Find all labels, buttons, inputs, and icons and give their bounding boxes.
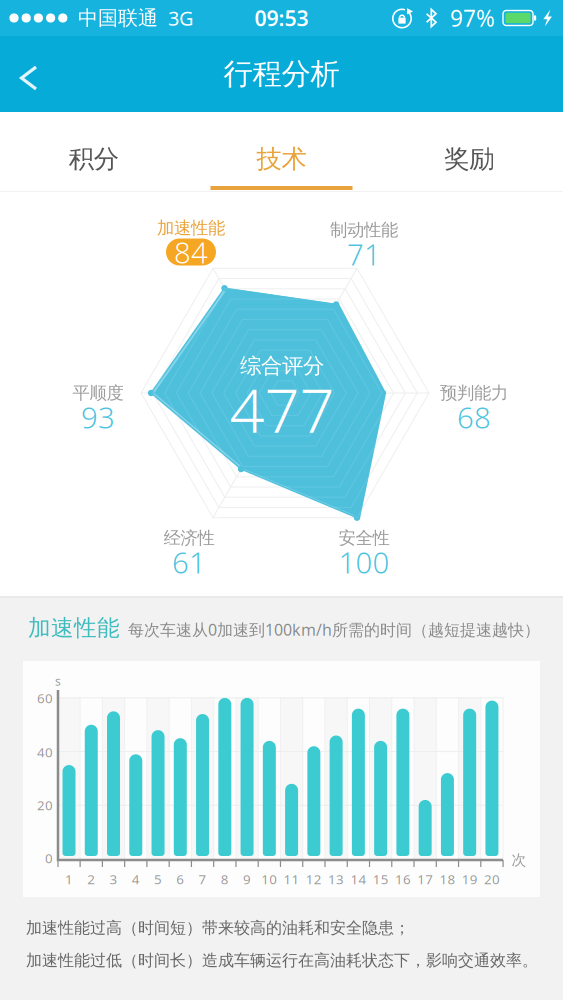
staticText: 40 xyxy=(37,743,53,761)
staticText: 1 xyxy=(65,870,73,888)
staticText: 6 xyxy=(176,870,184,888)
staticText: 2 xyxy=(87,870,95,888)
button[interactable]: 积分 xyxy=(0,112,188,192)
staticText: 93 xyxy=(81,397,115,436)
staticText: 14 xyxy=(350,870,366,888)
staticText: 预判能力 xyxy=(440,382,508,404)
staticText: 7 xyxy=(199,870,207,888)
staticText: 加速性能 xyxy=(157,217,225,239)
staticText: 18 xyxy=(439,870,455,888)
staticText: 积分 xyxy=(69,143,119,174)
staticText: 84 xyxy=(174,232,208,271)
staticText: 3G xyxy=(168,5,194,31)
staticText: 68 xyxy=(457,397,491,436)
staticText: 60 xyxy=(37,689,53,707)
staticText: 9 xyxy=(243,870,251,888)
staticText: 09:53 xyxy=(254,4,308,32)
staticText: 平顺度 xyxy=(72,382,123,404)
button[interactable]: Back xyxy=(0,36,56,112)
staticText: 次 xyxy=(511,851,526,869)
staticText: 奖励 xyxy=(444,143,494,174)
staticText: 加速性能 xyxy=(28,614,120,642)
staticText: 8 xyxy=(221,870,229,888)
staticText: 17 xyxy=(417,870,433,888)
staticText: 0 xyxy=(45,849,53,867)
staticText: 100 xyxy=(338,542,389,581)
staticText: 12 xyxy=(306,870,322,888)
staticText: 综合评分 xyxy=(240,353,324,379)
staticText: 经济性 xyxy=(163,527,214,549)
staticText: 安全性 xyxy=(338,527,389,549)
staticText: 每次车速从0加速到100km/h所需的时间（越短提速越快） xyxy=(128,619,540,640)
staticText: 71 xyxy=(347,234,381,273)
staticText: 61 xyxy=(172,542,206,581)
staticText: 11 xyxy=(284,870,300,888)
staticText: 行程分析 xyxy=(223,56,339,92)
staticText: 加速性能过高（时间短）带来较高的油耗和安全隐患； xyxy=(26,918,410,938)
staticText: 5 xyxy=(154,870,162,888)
staticText: 技术 xyxy=(256,143,306,174)
staticText: 13 xyxy=(328,870,344,888)
staticText: 20 xyxy=(37,796,53,814)
staticText: 中国联通 xyxy=(78,6,158,30)
staticText: 加速性能过低（时间长）造成车辆运行在高油耗状态下，影响交通效率。 xyxy=(26,951,538,970)
button[interactable]: 技术 xyxy=(188,112,375,192)
button[interactable]: 奖励 xyxy=(375,112,563,192)
staticText: 477 xyxy=(229,368,334,450)
staticText: 16 xyxy=(395,870,411,888)
staticText: 制动性能 xyxy=(330,219,398,241)
staticText: 97% xyxy=(450,3,495,33)
staticText: 3 xyxy=(109,870,117,888)
staticText: s xyxy=(55,673,61,689)
staticText: 19 xyxy=(462,870,478,888)
staticText: 4 xyxy=(132,870,140,888)
staticText: 15 xyxy=(373,870,389,888)
staticText: 20 xyxy=(484,870,500,888)
staticText: 10 xyxy=(261,870,277,888)
